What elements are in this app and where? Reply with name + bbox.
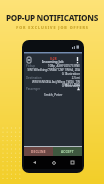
button[interactable]: DECLINE: [24, 147, 53, 156]
staticText: Pickup: [26, 64, 35, 68]
staticText: POP-UP NOTIFICATIONS: [6, 12, 98, 23]
button[interactable]: Home: [44, 156, 63, 169]
button[interactable]: Back: [24, 156, 44, 169]
staticText: Passenger: [26, 87, 41, 91]
staticText: DECLINE: [31, 150, 46, 154]
other: Job: [27, 57, 31, 63]
staticText: Destination: [26, 76, 42, 80]
staticText: G Illustration: [61, 84, 80, 88]
staticText: SW1W/adking/7WAV/12W 1WHA, 20A: [27, 68, 80, 72]
staticText: W5596N50EA Avij/Ways 1W26, 7W TW511 2WA: [24, 80, 80, 87]
button[interactable]: Recents: [63, 156, 82, 169]
staticText: FOR EXCLUSIVE JOB OFFERS: [16, 25, 89, 30]
staticText: Smith, Peter: [44, 93, 63, 97]
button[interactable]: ACCEPT: [53, 147, 82, 156]
staticText: 2.5 mi: [71, 76, 80, 80]
staticText: 0:28: [50, 56, 57, 60]
staticText: ACCEPT: [61, 150, 74, 154]
other: Details: [76, 57, 79, 63]
staticText: 108p, ASHFUD573 RNE: [47, 64, 80, 68]
staticText: Incoming Job: [42, 59, 64, 63]
staticText: G Illustration: [61, 72, 80, 76]
